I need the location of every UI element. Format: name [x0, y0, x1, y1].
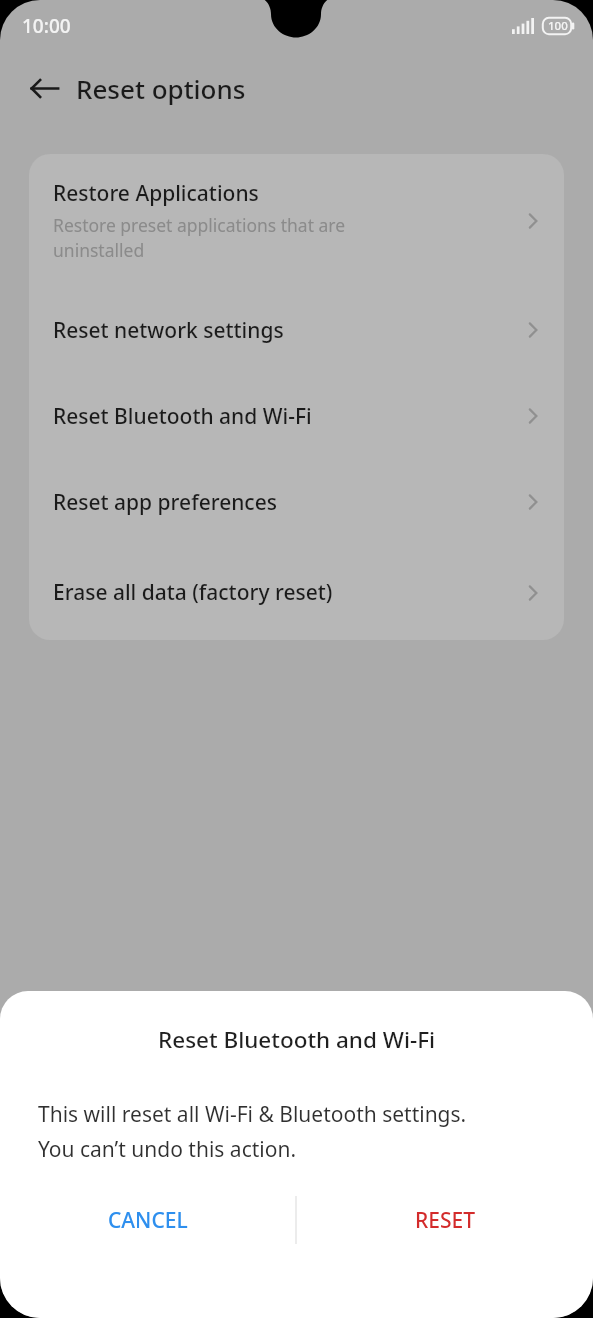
staticText: Reset Bluetooth and Wi-Fi [53, 402, 312, 431]
staticText: Reset network settings [53, 316, 284, 345]
button[interactable]: Restore Applications [29, 154, 564, 287]
staticText: 10:00 [22, 13, 71, 39]
button[interactable]: CANCEL [0, 1171, 295, 1273]
staticText: 100 [548, 18, 568, 34]
staticText: Reset options [76, 71, 246, 106]
staticText: This will reset all Wi-Fi & Bluetooth se… [38, 1100, 467, 1163]
button[interactable]: Reset app preferences [29, 459, 564, 545]
staticText: Erase all data (factory reset) [53, 578, 333, 607]
staticText: Restore preset applications that are uni… [53, 213, 346, 262]
staticText: RESET [415, 1206, 476, 1235]
button[interactable]: Back [23, 67, 65, 109]
button[interactable]: Erase all data (factory reset) [29, 545, 564, 640]
staticText: CANCEL [108, 1206, 188, 1235]
button[interactable]: Reset network settings [29, 287, 564, 373]
button[interactable]: Reset Bluetooth and Wi-Fi [29, 373, 564, 459]
staticText: Restore Applications [53, 179, 259, 208]
button[interactable]: RESET [297, 1171, 593, 1273]
staticText: Reset app preferences [53, 488, 277, 517]
staticText: Reset Bluetooth and Wi-Fi [158, 1024, 436, 1055]
